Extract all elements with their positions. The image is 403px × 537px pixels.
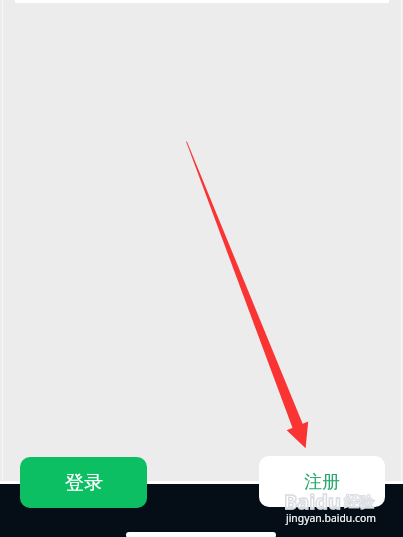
staticText: 经验: [344, 493, 374, 512]
staticText: 经验: [344, 493, 374, 512]
button[interactable]: 注册: [259, 456, 385, 507]
staticText: 登录: [65, 471, 103, 495]
other: Home: [126, 532, 276, 537]
button[interactable]: 登录: [20, 457, 147, 508]
staticText: Baidu: [284, 488, 341, 515]
staticText: 注册: [304, 471, 340, 494]
staticText: jingyan.baidu.com: [286, 511, 376, 525]
staticText: Baidu: [284, 488, 341, 515]
